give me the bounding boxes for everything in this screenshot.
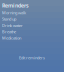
staticText: Stand up: [2, 16, 16, 22]
staticText: Edit reminders: [19, 55, 45, 60]
staticText: Breathe: [2, 29, 16, 34]
staticText: Drink water: [2, 23, 23, 28]
staticText: Morning walk: [2, 10, 26, 15]
staticText: Medication: [2, 35, 21, 41]
staticText: Reminders: [2, 2, 29, 9]
